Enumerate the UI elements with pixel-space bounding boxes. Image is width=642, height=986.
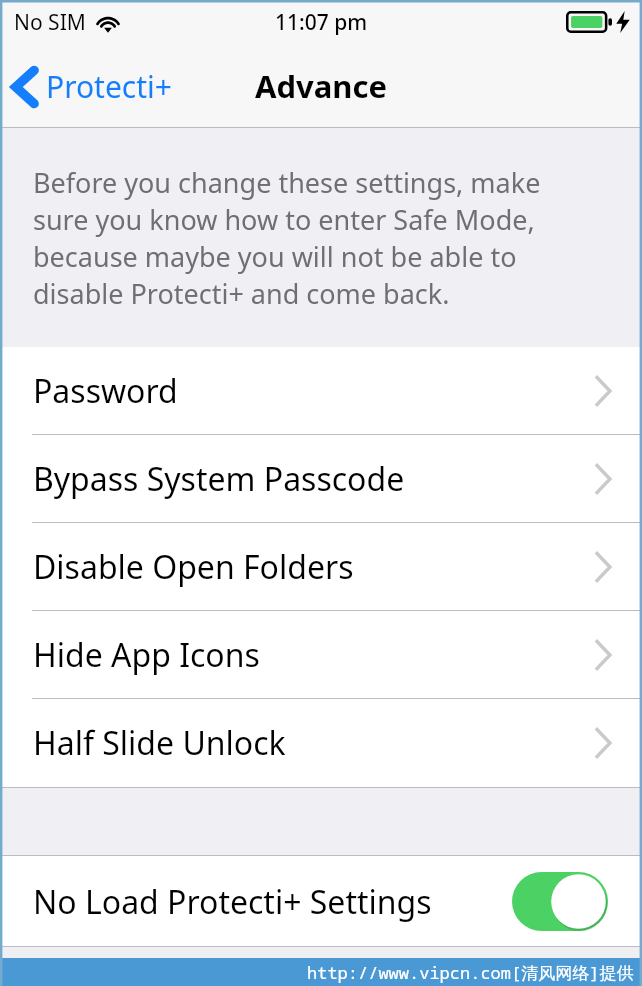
other: Back [14,68,36,106]
button[interactable]: Bypass System Passcode [0,435,642,523]
staticText: Bypass System Passcode [33,457,405,501]
staticText: 11:07 pm [275,8,368,37]
staticText: No Load Protecti+ Settings [33,880,432,924]
staticText: Protecti+ [46,66,172,107]
staticText: Before you change these settings, make s… [33,164,602,312]
button[interactable]: Half Slide Unlock [0,699,642,787]
button[interactable]: No Load Protecti+ Settings toggle [512,872,608,931]
staticText: No SIM [14,8,86,37]
staticText: Half Slide Unlock [33,721,286,765]
button[interactable]: Password [0,347,642,435]
staticText: Disable Open Folders [33,545,354,589]
staticText: Password [33,369,178,413]
staticText: Advance [255,65,387,107]
staticText: Hide App Icons [33,633,260,677]
button[interactable]: Back [0,58,184,115]
button[interactable]: No Load Protecti+ Settings [0,856,642,947]
button[interactable]: Hide App Icons [0,611,642,699]
button[interactable]: Disable Open Folders [0,523,642,611]
staticText: http://www.vipcn.com[清风网络]提供 [307,961,634,984]
